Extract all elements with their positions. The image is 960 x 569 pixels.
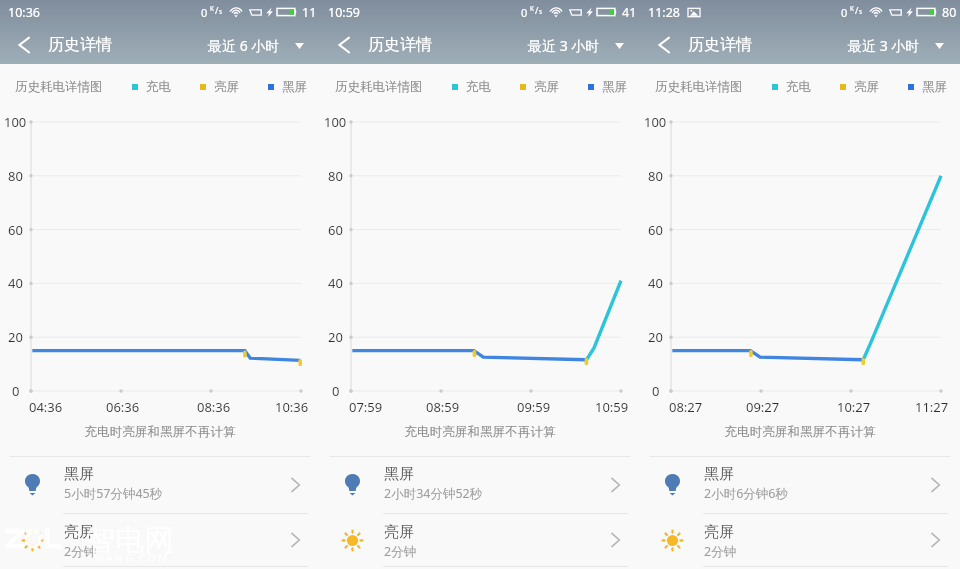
staticText: 08:36 <box>197 398 231 414</box>
staticText: 2小时34分钟52秒 <box>384 485 483 502</box>
staticText: 04:36 <box>29 398 63 414</box>
staticText: 充电时亮屏和黑屏不再计算 <box>0 424 320 440</box>
button[interactable]: Open details <box>283 528 307 552</box>
staticText: 80 <box>942 4 957 21</box>
staticText: 黑屏 <box>704 465 734 484</box>
staticText: 历史详情 <box>368 35 432 55</box>
staticText: 黑屏 <box>602 79 627 95</box>
staticText: / <box>215 4 219 16</box>
staticText: 10:59 <box>328 4 360 21</box>
button[interactable]: Open details <box>283 473 307 497</box>
staticText: 最近 3 小时 <box>528 36 600 55</box>
staticText: 100 <box>4 113 27 131</box>
button[interactable]: 亮屏 <box>0 514 320 566</box>
staticText: 2分钟 <box>384 543 417 560</box>
staticText: 2分钟 <box>64 543 97 560</box>
staticText: 黑屏 <box>384 465 414 484</box>
staticText: 40 <box>328 274 343 292</box>
staticText: K <box>850 4 855 13</box>
staticText: 08:27 <box>669 398 703 414</box>
staticText: 5小时57分钟45秒 <box>64 485 163 502</box>
button[interactable]: Open details <box>923 473 947 497</box>
button[interactable]: Back <box>0 26 48 64</box>
staticText: 0 <box>841 5 848 20</box>
staticText: 10:36 <box>8 4 40 21</box>
staticText: s <box>539 7 543 16</box>
staticText: 亮屏 <box>854 79 879 95</box>
button[interactable]: 最近 3 小时 <box>844 30 948 61</box>
staticText: 11:27 <box>915 398 949 414</box>
button[interactable]: 最近 3 小时 <box>524 30 628 61</box>
staticText: 智电网 <box>86 522 174 559</box>
staticText: 80 <box>648 167 663 185</box>
button[interactable]: 亮屏 <box>320 514 640 566</box>
staticText: 黑屏 <box>282 79 307 95</box>
staticText: 充电时亮屏和黑屏不再计算 <box>640 424 960 440</box>
staticText: 60 <box>648 221 663 239</box>
button[interactable]: Open details <box>603 528 627 552</box>
staticText: 06:36 <box>106 398 140 414</box>
staticText: 100 <box>644 113 667 131</box>
staticText: K <box>210 4 215 13</box>
staticText: 历史详情 <box>688 35 752 55</box>
button[interactable]: Open details <box>923 528 947 552</box>
staticText: 08:59 <box>426 398 460 414</box>
staticText: s <box>219 7 223 16</box>
staticText: 60 <box>328 221 343 239</box>
button[interactable]: Back <box>640 26 688 64</box>
staticText: 20 <box>648 328 663 346</box>
staticText: 80 <box>328 167 343 185</box>
staticText: 黑屏 <box>922 79 947 95</box>
staticText: 最近 3 小时 <box>848 36 920 55</box>
staticText: 20 <box>328 328 343 346</box>
staticText: 09:59 <box>517 398 551 414</box>
button[interactable]: 最近 6 小时 <box>204 30 308 61</box>
staticText: 07:59 <box>349 398 383 414</box>
staticText: 20 <box>8 328 23 346</box>
staticText: 充电时亮屏和黑屏不再计算 <box>320 424 640 440</box>
staticText: 亮屏 <box>534 79 559 95</box>
staticText: 100 <box>324 113 347 131</box>
button[interactable]: 黑屏 <box>320 457 640 513</box>
staticText: 11 <box>302 4 317 21</box>
staticText: 0 <box>521 5 528 20</box>
button[interactable]: Back <box>320 26 368 64</box>
staticText: 亮屏 <box>704 523 734 542</box>
button[interactable]: 黑屏 <box>640 457 960 513</box>
staticText: 10:36 <box>275 398 309 414</box>
staticText: 10:27 <box>837 398 871 414</box>
staticText: 亮屏 <box>384 523 414 542</box>
staticText: 历史耗电详情图 <box>15 79 103 95</box>
staticText: s <box>859 7 863 16</box>
staticText: 亮屏 <box>64 523 94 542</box>
staticText: 历史耗电详情图 <box>655 79 743 95</box>
staticText: 09:27 <box>746 398 780 414</box>
staticText: 11:28 <box>648 4 680 21</box>
staticText: 2分钟 <box>704 543 737 560</box>
staticText: 历史详情 <box>48 35 112 55</box>
staticText: 40 <box>648 274 663 292</box>
staticText: 最近 6 小时 <box>208 36 280 55</box>
staticText: 充电 <box>786 79 811 95</box>
staticText: 充电 <box>466 79 491 95</box>
staticText: 0 <box>12 382 20 400</box>
staticText: / <box>535 4 539 16</box>
staticText: 2小时6分钟6秒 <box>704 485 788 502</box>
staticText: 40 <box>8 274 23 292</box>
staticText: 80 <box>8 167 23 185</box>
staticText: / <box>855 4 859 16</box>
staticText: 41 <box>622 4 637 21</box>
staticText: 10:59 <box>595 398 629 414</box>
staticText: 亮屏 <box>214 79 239 95</box>
staticText: 60 <box>8 221 23 239</box>
button[interactable]: 黑屏 <box>0 457 320 513</box>
button[interactable]: Open details <box>603 473 627 497</box>
staticText: 历史耗电详情图 <box>335 79 423 95</box>
staticText: 充电 <box>146 79 171 95</box>
staticText: 0 <box>201 5 208 20</box>
staticText: K <box>530 4 535 13</box>
button[interactable]: 亮屏 <box>640 514 960 566</box>
staticText: 黑屏 <box>64 465 94 484</box>
staticText: 0 <box>652 382 660 400</box>
